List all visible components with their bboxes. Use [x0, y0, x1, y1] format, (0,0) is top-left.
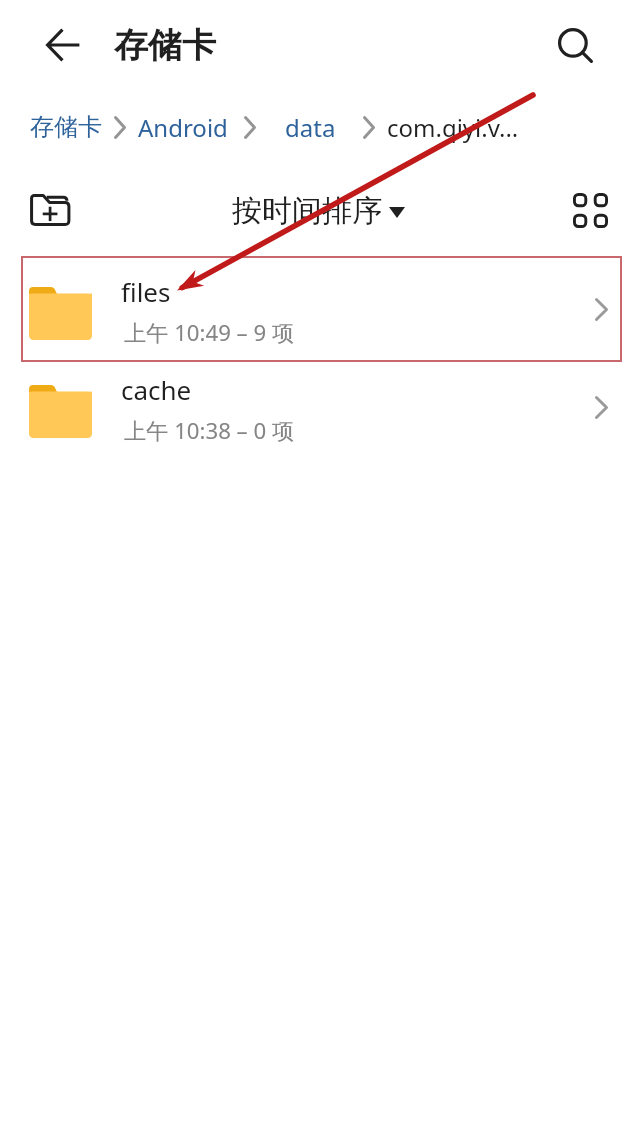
staticText: data	[285, 111, 336, 144]
button[interactable]: New folder	[12, 172, 88, 248]
button[interactable]: Android	[138, 111, 228, 144]
button[interactable]: 按时间排序	[232, 192, 405, 230]
button[interactable]: Search	[546, 16, 604, 74]
staticText: 存储卡	[30, 112, 102, 142]
button[interactable]: cache	[0, 362, 640, 460]
button[interactable]: 存储卡	[30, 112, 102, 142]
staticText: files	[121, 274, 171, 309]
staticText: Android	[138, 111, 228, 144]
button[interactable]: Back	[35, 17, 91, 73]
button[interactable]: com.qiyi.v...	[387, 111, 519, 144]
button[interactable]: files	[0, 264, 640, 362]
staticText: 存储卡	[114, 24, 216, 67]
staticText: cache	[121, 372, 192, 407]
button[interactable]: data	[285, 111, 336, 144]
staticText: 按时间排序	[232, 192, 382, 230]
button[interactable]: Grid view	[552, 172, 628, 248]
staticText: 上午 10:38 – 0 项	[124, 415, 295, 445]
staticText: 上午 10:49 – 9 项	[124, 317, 295, 347]
staticText: com.qiyi.v...	[387, 111, 519, 144]
